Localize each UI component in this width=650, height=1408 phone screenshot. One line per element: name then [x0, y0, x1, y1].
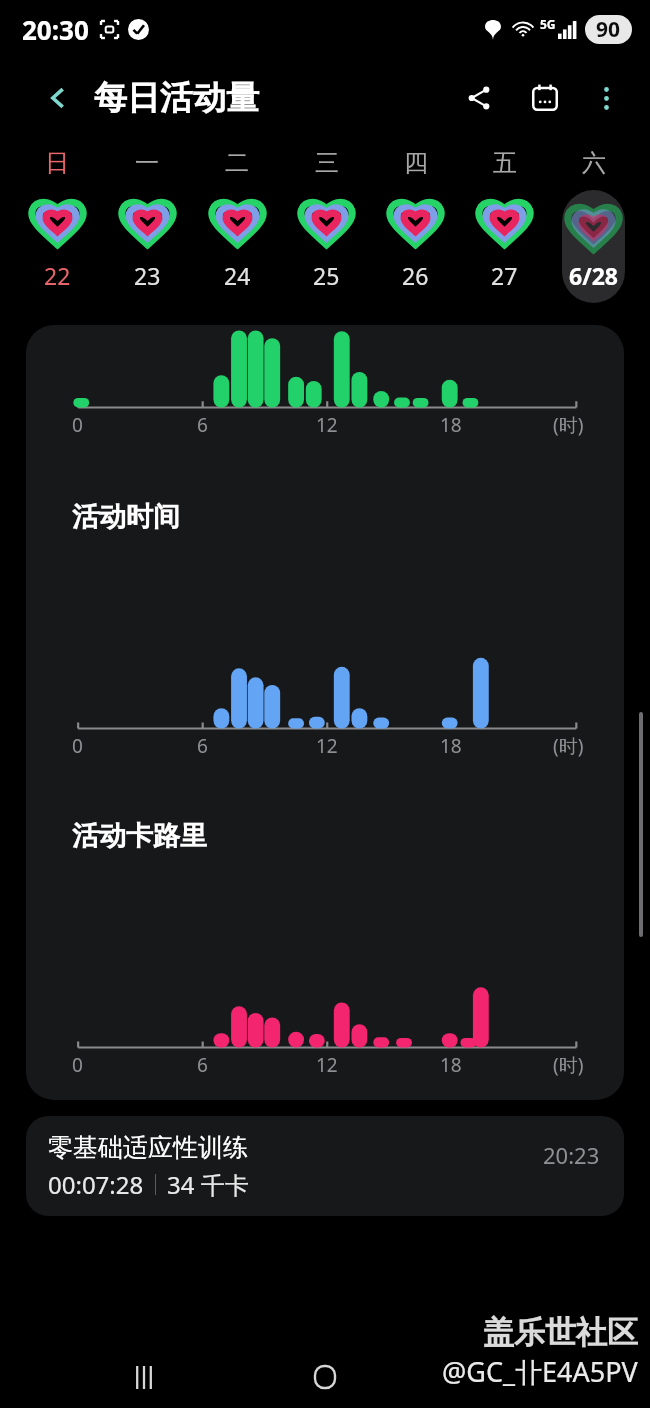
staticText: (时)	[553, 733, 584, 759]
staticText: 12	[316, 412, 338, 438]
staticText: 90	[596, 15, 621, 44]
staticText: 18	[440, 412, 462, 438]
button[interactable]: Back	[36, 76, 80, 120]
staticText: 18	[440, 733, 462, 759]
staticText: 24	[224, 260, 251, 291]
staticText: 00:07:28	[48, 1168, 144, 1201]
staticText: 12	[316, 1052, 338, 1078]
staticText: 20:30	[22, 12, 89, 47]
button[interactable]: Calendar	[522, 75, 568, 121]
staticText: 活动卡路里	[72, 819, 207, 853]
staticText: 二	[225, 148, 249, 178]
button[interactable]: 三	[282, 148, 371, 303]
button[interactable]: 日	[12, 148, 102, 303]
button[interactable]: 一	[102, 148, 192, 303]
staticText: 四	[404, 148, 428, 178]
staticText: 34 千卡	[167, 1168, 249, 1201]
staticText: (时)	[553, 412, 584, 438]
staticText: 25	[313, 260, 340, 291]
staticText: 22	[44, 260, 71, 291]
staticText: 18	[440, 1052, 462, 1078]
staticText: 一	[135, 148, 159, 178]
button[interactable]: More options	[584, 76, 628, 120]
staticText: 活动时间	[72, 500, 180, 534]
staticText: 0	[72, 1052, 83, 1078]
staticText: 23	[134, 260, 161, 291]
staticText: 零基础适应性训练	[48, 1132, 248, 1163]
button[interactable]: Recents	[122, 1355, 166, 1399]
button[interactable]: 四	[371, 148, 460, 303]
staticText: 0	[72, 733, 83, 759]
staticText: (时)	[553, 1052, 584, 1078]
button[interactable]: 五	[460, 148, 549, 303]
staticText: 三	[315, 148, 339, 178]
staticText: 12	[316, 733, 338, 759]
staticText: 6	[197, 733, 208, 759]
staticText: 六	[582, 148, 606, 178]
staticText: 6/28	[569, 260, 619, 291]
staticText: 27	[491, 260, 518, 291]
staticText: 20:23	[543, 1140, 600, 1170]
button[interactable]: Home	[302, 1354, 348, 1400]
staticText: 6	[197, 1052, 208, 1078]
button[interactable]: 二	[192, 148, 282, 303]
staticText: 26	[402, 260, 429, 291]
button[interactable]: 六	[549, 148, 638, 303]
button[interactable]: 零基础适应性训练	[26, 1116, 624, 1216]
staticText: 五	[493, 148, 517, 178]
staticText: 日	[45, 148, 69, 178]
staticText: 每日活动量	[94, 77, 259, 119]
staticText: 0	[72, 412, 83, 438]
button[interactable]: 0	[26, 325, 624, 1100]
staticText: @GC_卝E4A5PV	[442, 1353, 638, 1390]
staticText: 5G	[540, 16, 556, 32]
staticText: 盖乐世社区	[483, 1313, 638, 1352]
staticText: 6	[197, 412, 208, 438]
button[interactable]: Share	[456, 75, 502, 121]
